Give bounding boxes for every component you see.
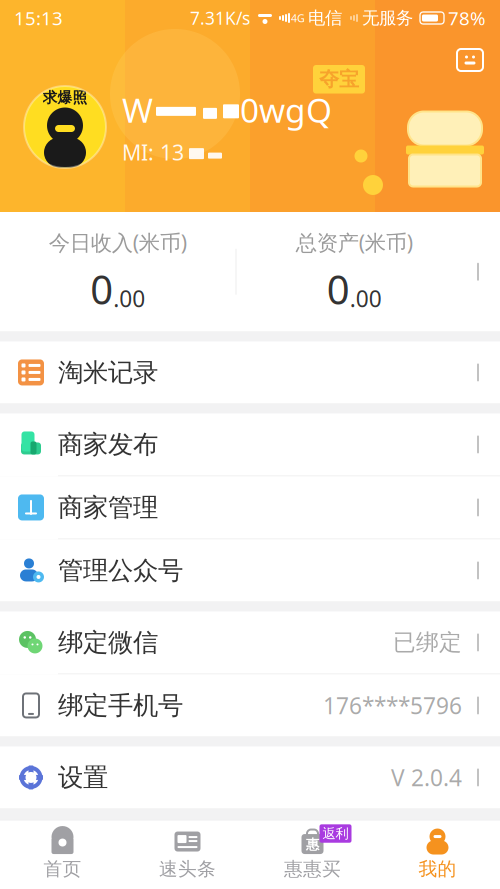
staticText: 我的 [418,857,456,880]
staticText: 求爆照 [42,88,87,106]
button[interactable]: 淘米记录 [0,341,500,403]
staticText: 夺宝 [319,67,359,92]
staticText: V 2.0.4 [391,762,462,792]
staticText: 0wgQ [240,88,332,132]
staticText: 已绑定 [393,628,462,656]
staticText: 返利 [322,825,348,842]
button[interactable]: 绑定微信 [0,611,500,674]
button[interactable]: Messages [448,40,492,80]
staticText: 7.31K/s [190,6,250,29]
button[interactable]: 绑定手机号 [0,674,500,736]
staticText: .00 [350,283,382,313]
staticText: 惠 [306,836,319,853]
staticText: 设置 [58,762,108,793]
staticText: 速头条 [159,857,216,880]
staticText: 0 [327,262,350,315]
button[interactable]: 设置 [0,746,500,808]
staticText: 绑定手机号 [58,690,183,721]
staticText: 淘米记录 [58,357,158,388]
staticText: 总资产(米币) [296,228,413,256]
button[interactable]: 首页 [0,820,125,888]
button[interactable]: 速头条 [125,820,250,888]
staticText: 商家管理 [58,492,158,523]
staticText: .00 [113,283,145,313]
button[interactable]: 商家管理 [0,476,500,539]
button[interactable]: 商家发布 [0,413,500,476]
button[interactable]: 今日收入(米币) [0,212,500,331]
button[interactable]: 惠 [250,820,375,888]
staticText: 今日收入(米币) [49,228,187,256]
staticText: 商家发布 [58,429,158,460]
button[interactable]: 管理公众号 [0,539,500,601]
staticText: 管理公众号 [58,555,183,586]
staticText: 0 [90,262,113,315]
staticText: 4G [291,11,305,25]
staticText: 无服务 [362,7,413,29]
staticText: MI: 13 [122,138,184,166]
staticText: 首页 [43,857,81,880]
staticText: 惠惠买 [284,857,341,880]
staticText: 电信 [308,7,342,29]
button[interactable]: 我的 [375,820,500,888]
staticText: 78% [448,6,486,30]
staticText: 176****5796 [323,690,462,720]
staticText: 15:13 [14,6,63,30]
staticText: 绑定微信 [58,627,158,658]
staticText: W [122,88,153,132]
